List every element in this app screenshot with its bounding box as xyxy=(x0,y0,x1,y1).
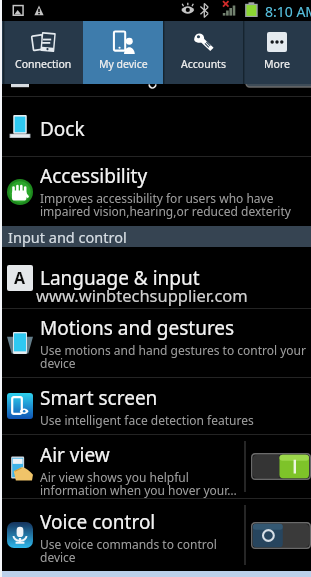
staticText: Use motions and hand gestures to control… xyxy=(40,342,307,372)
staticText: Input and control xyxy=(8,227,127,247)
staticText: Motions and gestures xyxy=(40,315,235,341)
button[interactable]: A xyxy=(0,247,311,308)
button[interactable]: Motions and gestures xyxy=(0,309,311,377)
staticText: 8:10 AM xyxy=(265,2,311,21)
button[interactable]: Smart screen xyxy=(0,378,311,434)
staticText: Accounts xyxy=(181,57,226,71)
button[interactable]: Voice control xyxy=(0,499,311,571)
button[interactable]: Switch on xyxy=(251,453,311,480)
button[interactable]: More xyxy=(243,21,311,84)
staticText: Dock xyxy=(40,116,85,142)
staticText: A xyxy=(14,267,26,289)
staticText: www.winbtechsupplier.com xyxy=(36,284,248,306)
button[interactable]: Switch off xyxy=(251,522,311,549)
staticText: More xyxy=(264,57,290,71)
button[interactable]: Accounts xyxy=(163,21,243,84)
button[interactable]: Input and control xyxy=(0,226,311,247)
staticText: Air view shows you helpful information w… xyxy=(40,469,245,499)
staticText: Use intelligent face detection features xyxy=(40,412,254,428)
staticText: Voice control xyxy=(40,509,156,535)
staticText: Use voice commands to control device xyxy=(40,536,245,566)
staticText: Language & input xyxy=(40,265,200,291)
staticText: Connection xyxy=(15,57,72,71)
button[interactable]: Air view xyxy=(0,435,311,498)
staticText: My device xyxy=(99,57,148,71)
staticText: Accessibility xyxy=(40,163,148,189)
staticText: Improves accessibility for users who hav… xyxy=(40,190,307,220)
staticText: Smart screen xyxy=(40,385,158,411)
button[interactable]: Accessibility xyxy=(0,157,311,226)
button[interactable]: Connection xyxy=(3,21,83,84)
button[interactable]: Dock xyxy=(0,97,311,156)
staticText: Air view xyxy=(40,442,110,468)
button[interactable]: My device xyxy=(83,21,163,84)
